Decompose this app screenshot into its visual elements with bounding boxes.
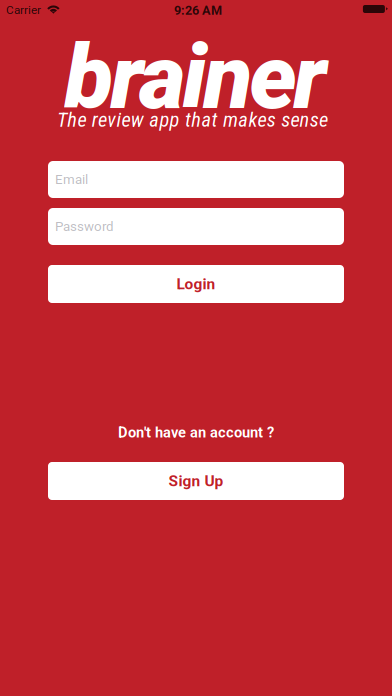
- button[interactable]: Login: [48, 265, 344, 303]
- staticText: Don't have an account ?: [118, 424, 274, 441]
- staticText: Password: [55, 219, 114, 234]
- staticText: The review app that makes sense: [57, 108, 328, 132]
- staticText: 9:26 AM: [174, 3, 222, 18]
- staticText: Carrier: [6, 3, 41, 17]
- button[interactable]: Sign Up: [48, 462, 344, 500]
- staticText: brainer: [64, 25, 326, 130]
- staticText: Email: [55, 172, 88, 187]
- staticText: Sign Up: [168, 472, 223, 490]
- staticText: Login: [176, 275, 215, 293]
